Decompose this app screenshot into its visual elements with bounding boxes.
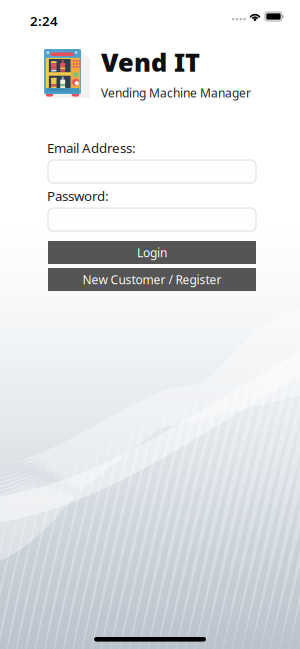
staticText: Password: xyxy=(47,187,109,205)
button[interactable]: Login xyxy=(48,241,256,264)
staticText: Vend IT xyxy=(101,45,200,79)
staticText: 2:24 xyxy=(30,12,58,30)
staticText: New Customer / Register xyxy=(82,271,221,287)
staticText: Email Address: xyxy=(47,139,136,157)
staticText: Login xyxy=(137,244,167,260)
staticText: Vending Machine Manager xyxy=(101,85,251,101)
button[interactable]: New Customer / Register xyxy=(48,268,256,291)
